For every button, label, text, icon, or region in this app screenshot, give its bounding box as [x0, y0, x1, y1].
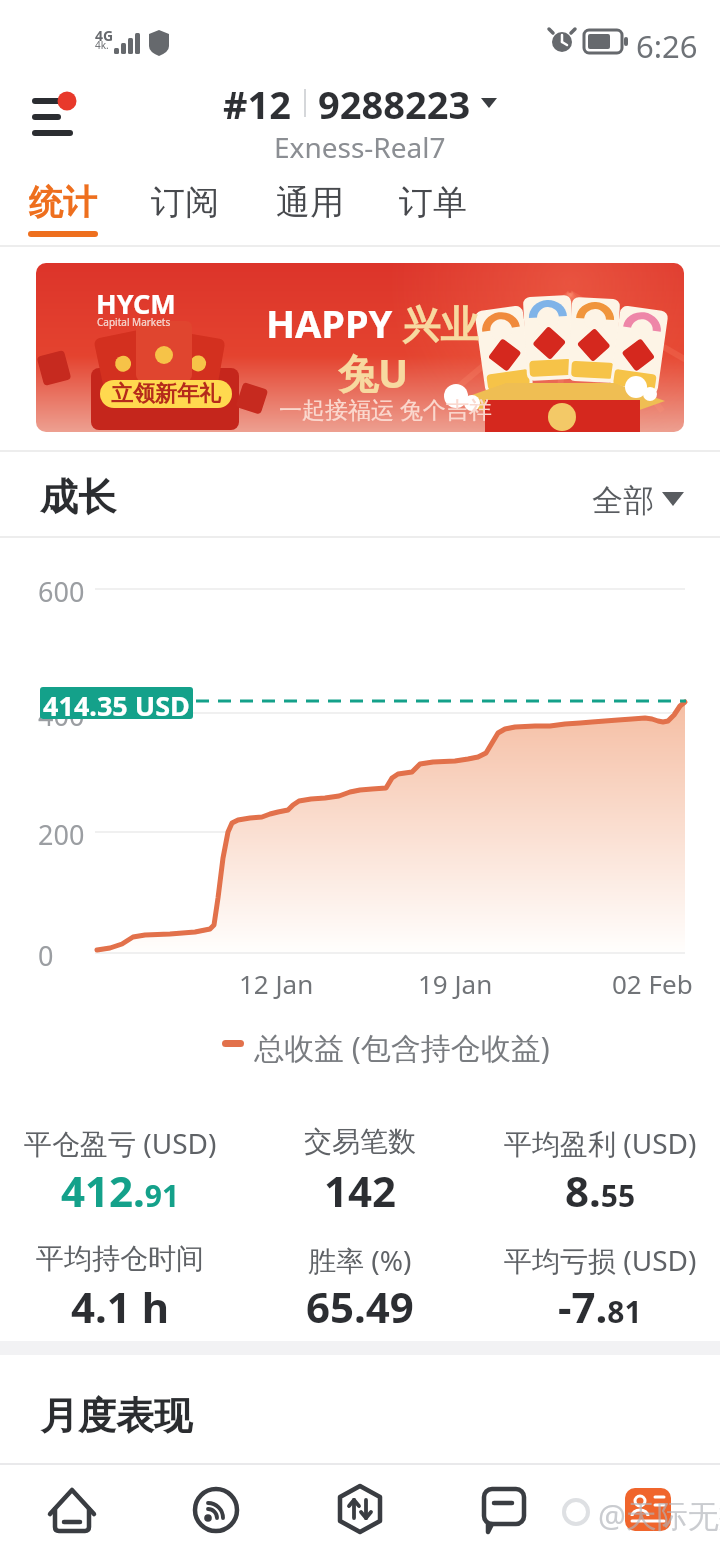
staticText: -7.81 [558, 1278, 642, 1335]
button[interactable]: 订阅 [135, 170, 235, 234]
button[interactable] [444, 1465, 564, 1560]
button[interactable] [12, 1465, 132, 1560]
staticText: 胜率 (%) [308, 1241, 412, 1279]
staticText: #12 [223, 78, 292, 128]
staticText: 一起接福运 兔个吉祥 [279, 393, 492, 424]
staticText: 统计 [29, 181, 97, 224]
staticText: 9288223 [318, 78, 471, 128]
button[interactable]: 订单 [383, 170, 483, 234]
button[interactable]: 统计 [13, 170, 113, 234]
staticText: @天际无痕 [598, 1494, 720, 1536]
staticText: 兔U [338, 345, 409, 400]
staticText: 600 [38, 573, 85, 610]
button[interactable] [300, 1465, 420, 1560]
staticText: 月度表现 [40, 1392, 192, 1440]
staticText: 4G [95, 26, 114, 45]
staticText: 平均持仓时间 [36, 1241, 204, 1276]
staticText: 全部 [592, 481, 654, 520]
staticText: 通用 [276, 181, 344, 224]
staticText: 总收益 (包含持仓收益) [254, 1027, 550, 1068]
staticText: 65.49 [306, 1278, 414, 1335]
staticText: 6:26 [636, 25, 698, 67]
staticText: 02 Feb [612, 966, 693, 1001]
staticText: 平均盈利 (USD) [504, 1124, 697, 1162]
staticText: 8.55 [565, 1162, 636, 1219]
staticText: 400 [38, 697, 85, 734]
staticText: 平仓盈亏 (USD) [24, 1124, 217, 1162]
staticText: Capital Markets [97, 315, 171, 329]
staticText: 12 Jan [239, 966, 314, 1001]
staticText: 142 [324, 1162, 397, 1219]
button[interactable]: 通用 [260, 170, 360, 234]
staticText: HYCM [96, 285, 176, 322]
staticText: 0 [38, 937, 54, 974]
staticText: 平均亏损 (USD) [504, 1241, 697, 1279]
staticText: 成长 [40, 473, 116, 521]
staticText: 414.35 USD [43, 687, 190, 719]
button[interactable]: HYCM [36, 263, 684, 432]
staticText: 订单 [399, 181, 467, 224]
staticText: 立领新年礼 [111, 380, 221, 408]
staticText: Exness-Real7 [274, 128, 446, 166]
staticText: 19 Jan [418, 966, 493, 1001]
button[interactable] [156, 1465, 276, 1560]
button[interactable] [580, 470, 690, 520]
staticText: 4.1 h [71, 1278, 170, 1335]
staticText: 订阅 [151, 181, 219, 224]
staticText: 4k. [95, 38, 109, 52]
button[interactable] [588, 1465, 708, 1560]
button[interactable] [20, 85, 85, 145]
staticText: 200 [38, 816, 85, 853]
staticText: 412.91 [61, 1162, 180, 1219]
staticText: 交易笔数 [304, 1124, 416, 1159]
staticText: HAPPY 兴业 [266, 297, 479, 349]
